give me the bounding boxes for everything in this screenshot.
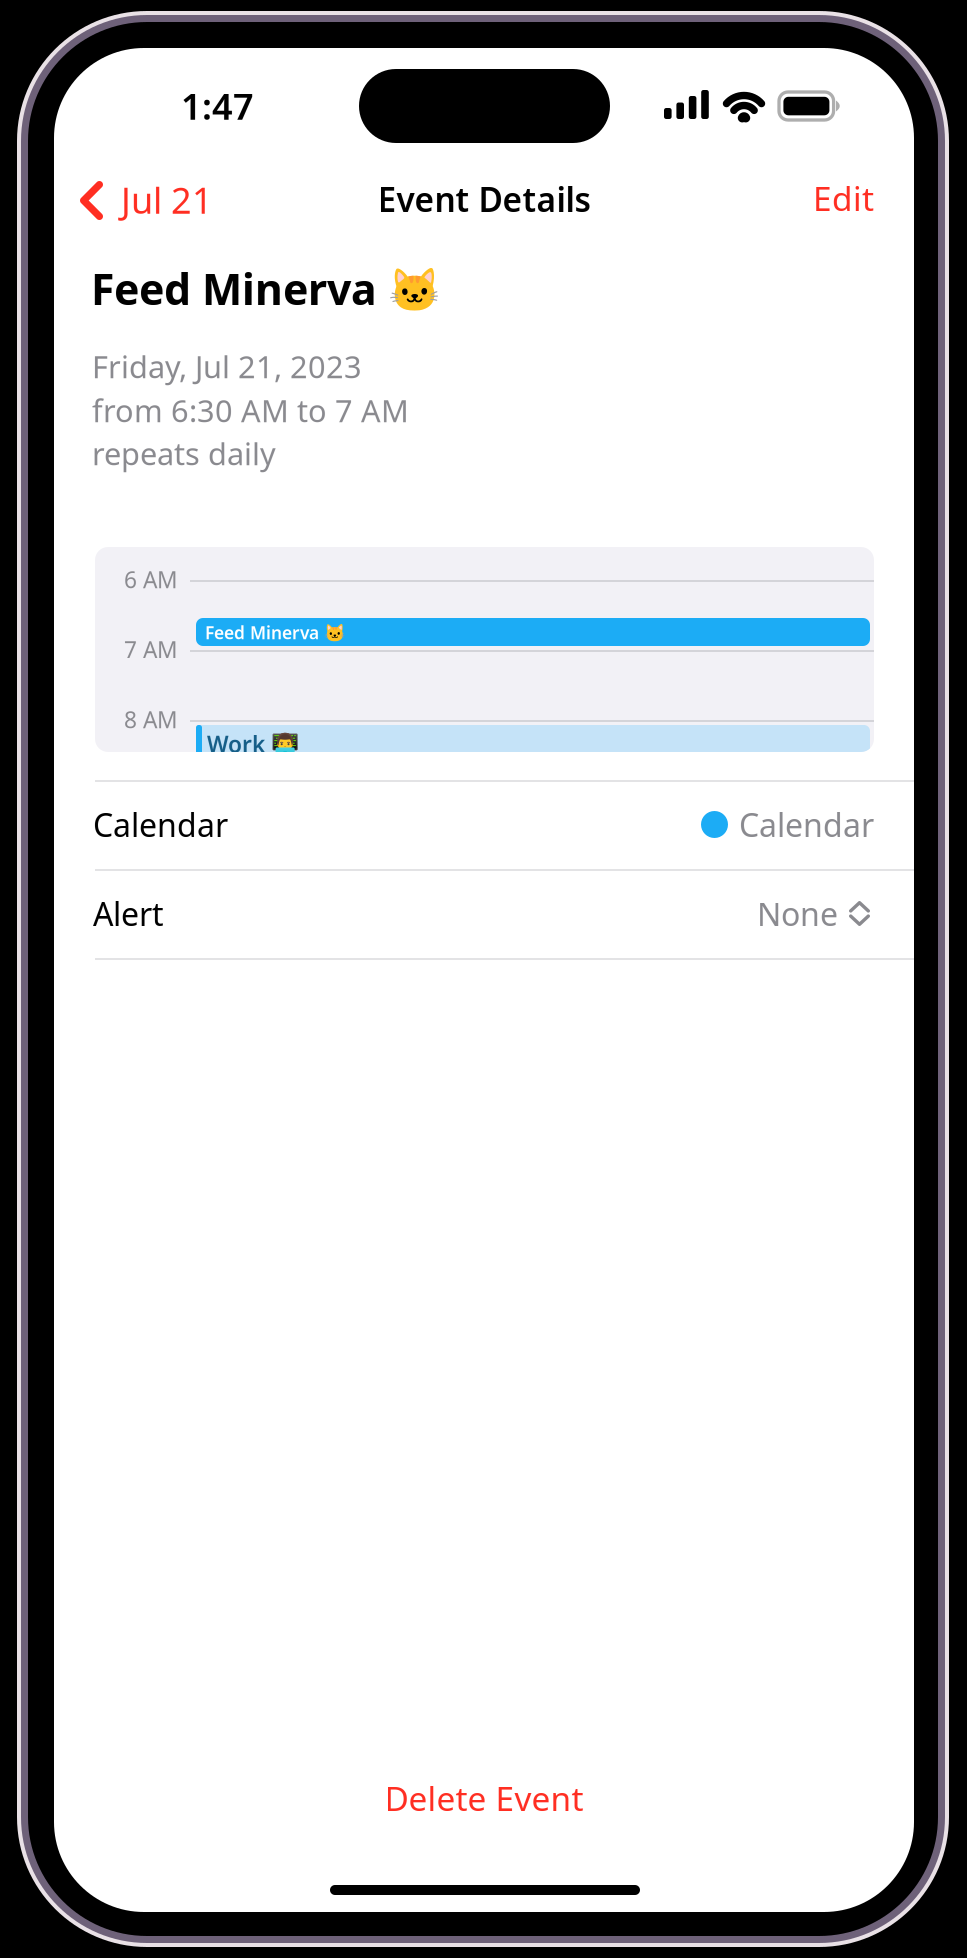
button[interactable]: Delete Event [54,1756,914,1840]
staticText: repeats daily [92,433,276,474]
staticText: Jul 21 [121,176,213,224]
button[interactable]: Jul 21 [54,160,314,236]
staticText: 8 AM [124,704,178,734]
staticText: from 6:30 AM to 7 AM [92,390,409,431]
staticText: 6 AM [124,564,178,594]
staticText: 7 AM [124,634,178,664]
button[interactable]: Alert [54,871,914,960]
staticText: Event Details [377,177,590,221]
staticText: 1:47 [181,82,254,130]
staticText: Delete Event [384,1776,583,1820]
staticText: Calendar [739,803,874,846]
button[interactable]: Calendar [54,782,914,871]
staticText: Feed Minerva 🐱 [91,260,441,317]
staticText: Feed Minerva 🐱 [205,621,346,644]
staticText: Alert [93,892,164,935]
staticText: Calendar [93,803,228,846]
button[interactable]: Edit [694,160,874,236]
staticText: Edit [813,176,874,220]
staticText: Friday, Jul 21, 2023 [92,346,362,387]
staticText: None [757,892,838,935]
staticText: Work 👨‍💻 [207,729,299,759]
